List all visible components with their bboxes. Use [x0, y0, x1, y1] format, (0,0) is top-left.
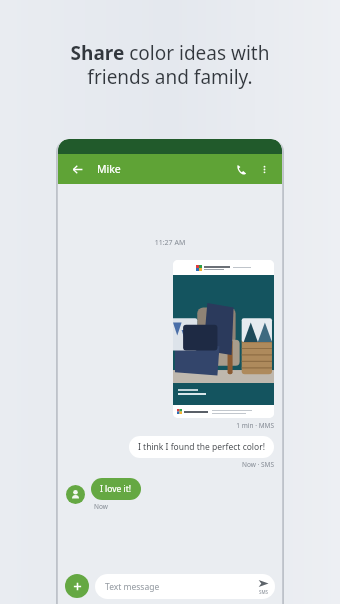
staticText: I love it!: [100, 483, 132, 495]
button[interactable]: Add attachment: [65, 574, 89, 598]
staticText: Now: [94, 502, 108, 511]
staticText: 1 min · MMS: [66, 421, 274, 430]
staticText: 11:27 AM: [66, 238, 274, 248]
button[interactable]: Back: [66, 158, 88, 180]
button[interactable]: Contact avatar: [66, 485, 85, 504]
staticText: I think I found the perfect color!: [138, 441, 265, 453]
staticText: Share color ideas with friends and famil…: [18, 40, 322, 89]
button[interactable]: More options: [254, 159, 274, 179]
staticText: Mike: [97, 162, 121, 176]
staticText: Now · SMS: [66, 460, 274, 469]
staticText: Text message: [105, 581, 160, 593]
button[interactable]: Call: [230, 158, 252, 180]
button[interactable]: I think I found the perfect color!: [129, 436, 274, 458]
staticText: SMS: [259, 589, 269, 595]
button[interactable]: Shared color photo: [173, 260, 274, 418]
button[interactable]: Text message: [95, 574, 275, 599]
button[interactable]: I love it!: [91, 478, 141, 500]
